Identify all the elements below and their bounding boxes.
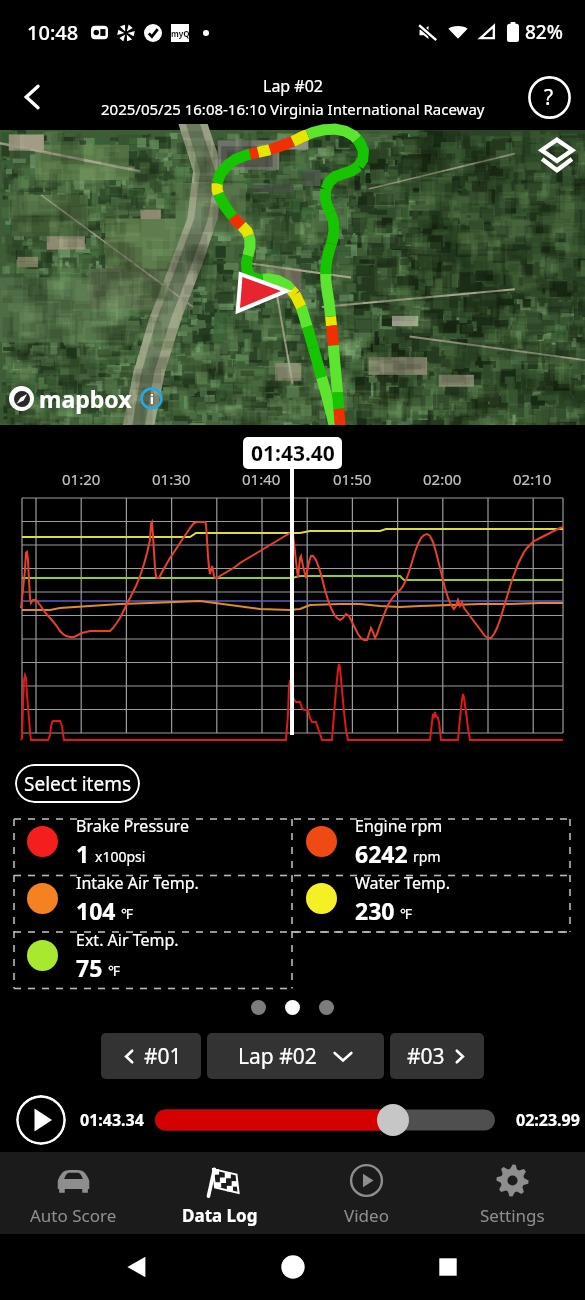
staticText: #01	[144, 1042, 182, 1071]
button[interactable]: Back	[119, 1249, 155, 1285]
staticText: ℉	[400, 904, 413, 923]
staticText: 01:30	[152, 469, 191, 489]
button[interactable]: Video	[293, 1152, 439, 1234]
button[interactable]: Select items	[15, 764, 140, 803]
button[interactable]: Home	[275, 1249, 311, 1285]
button[interactable]: Water Temp.	[292, 870, 585, 927]
staticText: 01:50	[333, 469, 372, 489]
staticText: 75	[76, 952, 103, 983]
staticText: Intake Air Temp.	[76, 872, 199, 894]
staticText: 01:40	[242, 469, 281, 489]
button[interactable]: Brake Pressure	[0, 813, 292, 870]
button[interactable]: Settings	[439, 1152, 585, 1234]
button[interactable]: Back	[8, 72, 58, 122]
button[interactable]: Intake Air Temp.	[0, 870, 292, 927]
staticText: mapbox	[39, 383, 132, 414]
staticText: rpm	[413, 847, 441, 866]
button[interactable]: Engine rpm	[292, 813, 585, 870]
staticText: i	[150, 390, 154, 408]
button[interactable]: Ext. Air Temp.	[0, 927, 292, 984]
staticText: Brake Pressure	[76, 815, 189, 837]
staticText: ℉	[108, 961, 121, 980]
staticText: 01:43.40	[251, 439, 335, 468]
staticText: Auto Score	[30, 1204, 117, 1227]
button[interactable]: Playback position	[155, 1108, 495, 1132]
button[interactable]: #03	[390, 1033, 484, 1079]
staticText: Engine rpm	[355, 815, 443, 837]
button[interactable]: #01	[101, 1033, 201, 1079]
staticText: #03	[407, 1042, 445, 1071]
staticText: 104	[76, 895, 116, 926]
staticText: 1	[76, 838, 90, 869]
staticText: Select items	[24, 771, 132, 797]
button[interactable]: Map layers	[538, 136, 576, 174]
button[interactable]: Play	[16, 1095, 66, 1145]
staticText: 6242	[355, 838, 408, 869]
staticText: 02:10	[513, 469, 552, 489]
button[interactable]: Lap #02	[207, 1033, 384, 1079]
staticText: 02:00	[423, 469, 462, 489]
staticText: 02:23.99	[516, 1109, 580, 1131]
staticText: Lap #02	[238, 1042, 317, 1071]
staticText: 01:20	[62, 469, 101, 489]
staticText: myQ	[171, 28, 189, 39]
staticText: 01:43.34	[80, 1109, 144, 1131]
staticText: 82%	[525, 19, 563, 45]
staticText: 10:48	[27, 19, 79, 46]
staticText: ?	[544, 83, 554, 112]
staticText: x100psi	[95, 847, 146, 866]
staticText: ℉	[121, 904, 134, 923]
staticText: Video	[344, 1204, 389, 1227]
staticText: Water Temp.	[355, 872, 450, 894]
button[interactable]: Help	[525, 73, 573, 121]
button[interactable]: Data Log	[147, 1152, 293, 1234]
button[interactable]: Recents	[430, 1249, 466, 1285]
staticText: Lap #02	[263, 75, 324, 97]
staticText: Ext. Air Temp.	[76, 929, 179, 951]
staticText: 230	[355, 895, 395, 926]
button[interactable]: Auto Score	[0, 1152, 147, 1234]
staticText: Data Log	[182, 1204, 258, 1227]
staticText: 2025/05/25 16:08-16:10 Virginia Internat…	[101, 99, 485, 119]
staticText: Settings	[480, 1204, 545, 1227]
